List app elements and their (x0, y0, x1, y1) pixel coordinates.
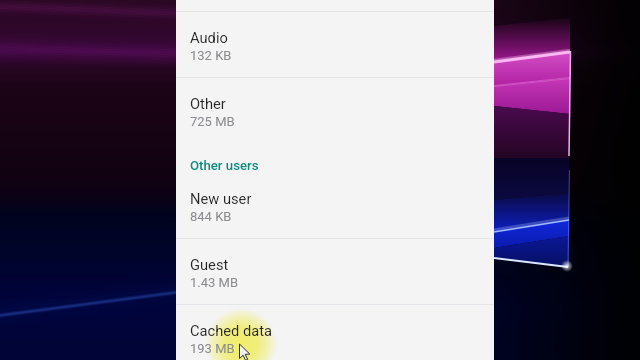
staticText: 725 MB (190, 114, 235, 129)
staticText: Guest (190, 256, 229, 273)
button[interactable]: Audio (176, 12, 494, 77)
staticText: Cached data (190, 322, 273, 339)
staticText: New user (190, 190, 252, 207)
button[interactable]: New user (176, 173, 494, 238)
button[interactable]: Cached data (176, 305, 494, 360)
staticText: Audio (190, 29, 228, 46)
button[interactable]: Guest (176, 239, 494, 304)
staticText: 193 MB (190, 341, 235, 356)
staticText: 844 KB (190, 209, 232, 224)
staticText: 132 KB (190, 48, 232, 63)
button[interactable]: Other users (176, 143, 494, 173)
staticText: Other (190, 95, 226, 112)
staticText: 1.43 MB (190, 275, 239, 290)
button[interactable]: Other (176, 78, 494, 143)
staticText: Other users (190, 158, 259, 173)
